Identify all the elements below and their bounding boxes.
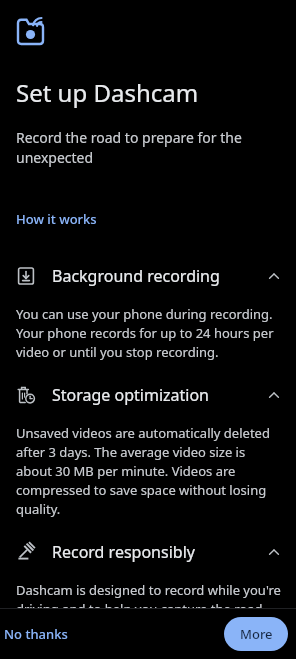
staticText: Record responsibly [52, 541, 195, 563]
button[interactable]: More [224, 617, 288, 651]
staticText: How it works [16, 210, 97, 228]
staticText: Unsaved videos are automatically deleted… [16, 424, 282, 518]
button[interactable]: No thanks [0, 617, 80, 651]
staticText: Dashcam is designed to record while you'… [16, 581, 282, 608]
staticText: You can use your phone during recording.… [16, 305, 282, 361]
button[interactable]: Background recording [0, 259, 296, 293]
button[interactable]: Record responsibly [0, 535, 296, 569]
staticText: Storage optimization [52, 384, 210, 406]
staticText: No thanks [4, 625, 68, 643]
staticText: More [240, 625, 273, 643]
button[interactable]: How it works [0, 208, 113, 230]
button[interactable]: Storage optimization [0, 378, 296, 412]
staticText: Set up Dashcam [16, 76, 199, 109]
staticText: Record the road to prepare for the unexp… [16, 128, 274, 168]
staticText: Background recording [52, 265, 220, 287]
